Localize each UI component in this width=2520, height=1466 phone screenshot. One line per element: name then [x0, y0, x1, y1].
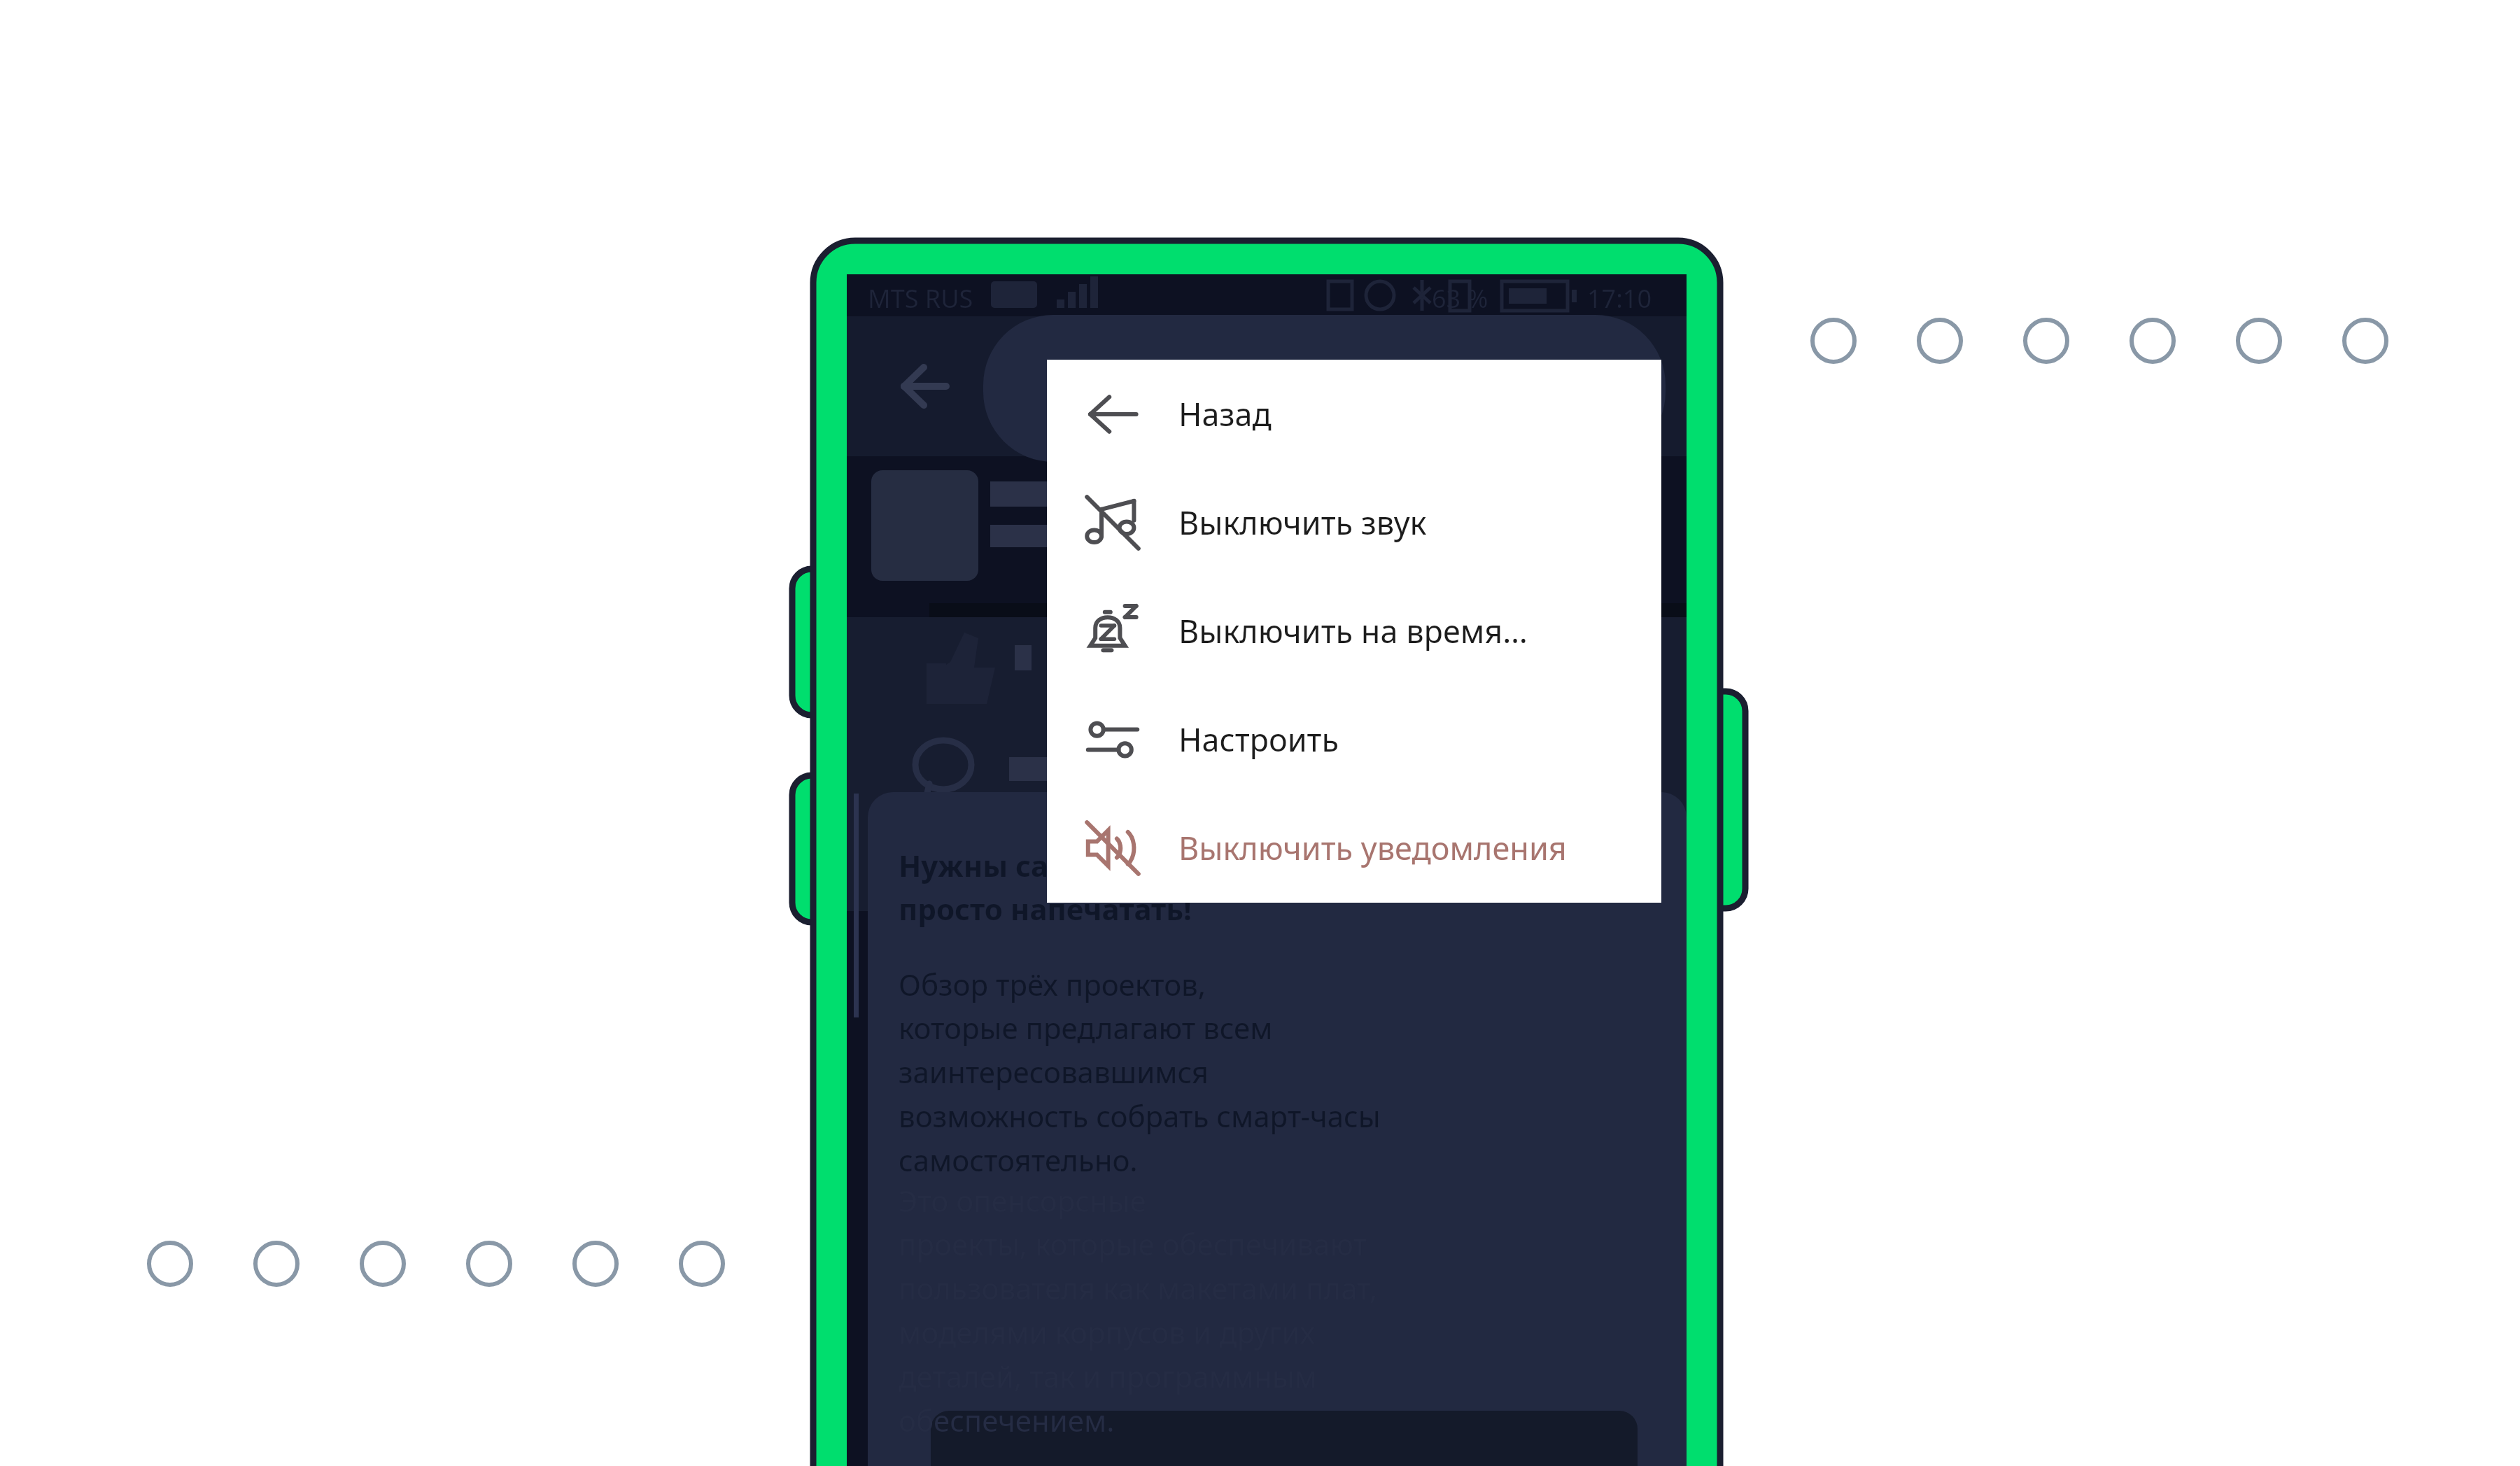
staticText: MTS RUS [868, 281, 973, 316]
staticText: Выключить на время… [1178, 609, 1528, 652]
button[interactable]: Back [1047, 360, 1661, 468]
button[interactable]: Snooze [1047, 577, 1661, 685]
staticText: Обзор трёх проектов, которые предлагают … [899, 964, 1381, 1180]
staticText: Назад [1178, 393, 1272, 435]
staticText: Выключить звук [1178, 501, 1427, 544]
button[interactable]: Mute sound [1047, 468, 1661, 577]
staticText: Настроить [1178, 718, 1339, 761]
staticText: 63 % [1432, 281, 1488, 316]
staticText: Нужны сами часы — просто напечатать! [899, 845, 1215, 929]
button[interactable]: Configure [1047, 685, 1661, 794]
staticText: 17:10 [1587, 281, 1652, 316]
button[interactable]: Turn off notifications [1047, 794, 1661, 902]
staticText: Это опенсорсные проекты, которые обеспеч… [899, 1180, 1378, 1441]
staticText: Выключить уведомления [1178, 826, 1567, 869]
